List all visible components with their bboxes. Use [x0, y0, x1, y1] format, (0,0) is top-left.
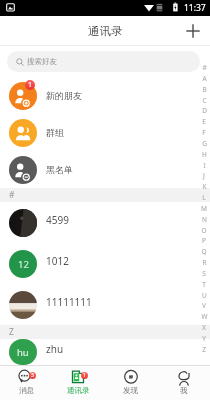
- button[interactable]: 发现: [104, 366, 157, 400]
- staticText: I: [203, 161, 206, 170]
- staticText: hu: [17, 346, 29, 359]
- staticText: 搜索好友: [27, 57, 57, 66]
- staticText: S: [202, 269, 206, 278]
- button[interactable]: 黑名单: [0, 151, 210, 188]
- staticText: Z: [202, 345, 206, 354]
- staticText: 11111111: [46, 295, 92, 309]
- staticText: #: [202, 63, 207, 72]
- button[interactable]: 我: [157, 366, 210, 400]
- staticText: N: [202, 215, 207, 224]
- button[interactable]: 1: [0, 77, 210, 114]
- staticText: G: [202, 139, 207, 148]
- button[interactable]: 群组: [0, 114, 210, 151]
- staticText: L: [202, 193, 206, 202]
- staticText: 通讯录: [88, 24, 123, 38]
- staticText: 11:37: [184, 2, 206, 14]
- staticText: 发现: [123, 386, 138, 395]
- button[interactable]: 4599: [0, 202, 210, 243]
- staticText: 群组: [46, 127, 64, 138]
- button[interactable]: 搜索好友: [7, 51, 200, 72]
- staticText: 消息: [19, 386, 34, 395]
- staticText: C: [202, 96, 207, 105]
- button[interactable]: 11111111: [0, 284, 210, 325]
- staticText: D: [202, 106, 207, 115]
- staticText: Y: [202, 334, 206, 343]
- staticText: 新的朋友: [46, 90, 82, 101]
- staticText: #: [9, 189, 15, 201]
- staticText: O: [201, 226, 207, 235]
- staticText: J: [203, 171, 205, 180]
- staticText: X: [202, 323, 206, 332]
- staticText: 1012: [46, 254, 69, 268]
- staticText: zhu: [46, 342, 64, 356]
- staticText: M: [201, 204, 207, 213]
- staticText: 1: [28, 80, 33, 90]
- staticText: T: [202, 280, 206, 289]
- staticText: 黑名单: [46, 164, 73, 175]
- staticText: 12: [18, 258, 29, 271]
- button[interactable]: hu: [0, 339, 210, 365]
- staticText: A: [202, 74, 207, 83]
- button[interactable]: 12: [0, 243, 210, 284]
- staticText: V: [202, 301, 206, 310]
- staticText: H: [202, 150, 207, 159]
- staticText: 3: [31, 372, 34, 379]
- staticText: F: [202, 128, 206, 137]
- staticText: U: [202, 291, 207, 300]
- staticText: 我: [180, 386, 188, 395]
- staticText: Q: [201, 247, 207, 256]
- button[interactable]: 3: [0, 366, 52, 400]
- staticText: R: [202, 258, 207, 267]
- button[interactable]: Add: [181, 19, 205, 43]
- staticText: B: [202, 85, 207, 94]
- staticText: Z: [9, 326, 14, 338]
- button[interactable]: 1: [52, 366, 104, 400]
- staticText: W: [201, 312, 208, 321]
- staticText: E: [202, 117, 206, 126]
- staticText: 4599: [46, 213, 69, 227]
- staticText: K: [202, 182, 207, 191]
- staticText: 通讯录: [67, 386, 90, 395]
- staticText: P: [202, 236, 206, 245]
- staticText: 1: [83, 372, 86, 379]
